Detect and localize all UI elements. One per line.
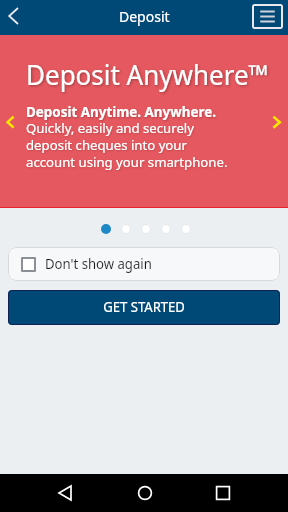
staticText: Deposit Anytime. Anywhere.	[26, 101, 217, 121]
button[interactable]: Page 3	[141, 224, 151, 234]
staticText: GET STARTED	[103, 297, 186, 316]
button[interactable]: Next	[262, 103, 288, 139]
button[interactable]: Recents	[204, 474, 241, 511]
button[interactable]: Page 1	[101, 224, 111, 234]
button[interactable]: GET STARTED	[8, 290, 280, 325]
staticText: Deposit Anywhere™	[26, 56, 269, 93]
button[interactable]: Back	[0, 0, 35, 35]
button[interactable]: Back	[46, 474, 83, 511]
button[interactable]: Page 4	[161, 224, 171, 234]
button[interactable]: Don't show again	[8, 247, 280, 281]
button[interactable]: Home	[126, 474, 163, 511]
button[interactable]: Page 2	[121, 224, 131, 234]
staticText: Don't show again	[45, 254, 152, 273]
button[interactable]: Menu	[252, 4, 283, 29]
button[interactable]: Previous	[0, 103, 26, 139]
staticText: Deposit	[119, 7, 170, 26]
button[interactable]: Page 5	[181, 224, 191, 234]
staticText: Quickly, easily and securely deposit che…	[26, 119, 228, 171]
